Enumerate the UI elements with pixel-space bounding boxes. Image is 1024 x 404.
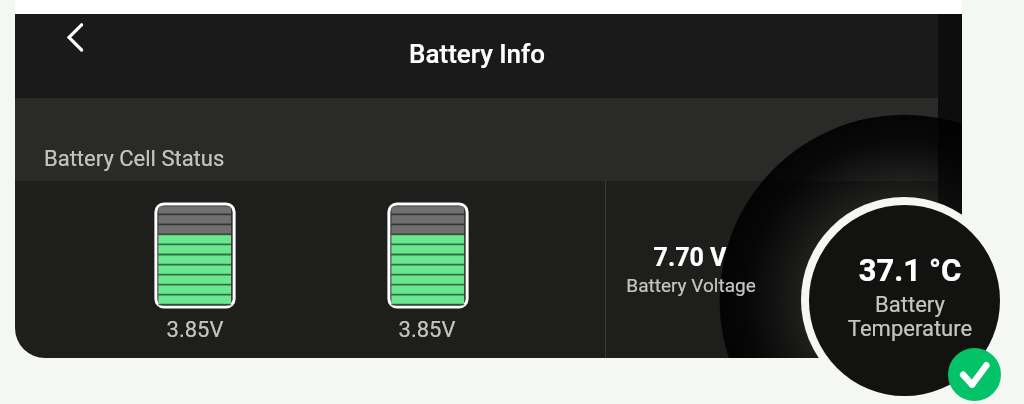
staticText: 7.70 V [490, 243, 890, 272]
button[interactable]: Battery healthy [948, 348, 1001, 401]
button[interactable]: Back [43, 5, 107, 69]
staticText: Battery Voltage [491, 274, 891, 296]
button[interactable] [801, 197, 1007, 403]
staticText: Battery Cell Status [44, 146, 225, 172]
staticText: 3.85V [0, 317, 395, 343]
staticText: 3.85V [227, 317, 627, 343]
button[interactable] [387, 202, 469, 309]
button[interactable] [606, 181, 776, 358]
button[interactable]: Battery Cell Status [15, 98, 962, 181]
staticText: Battery Temperature [790, 292, 1024, 342]
staticText: 37.1 °C [710, 252, 1024, 288]
button[interactable] [154, 202, 236, 309]
staticText: Battery Info [409, 39, 546, 69]
